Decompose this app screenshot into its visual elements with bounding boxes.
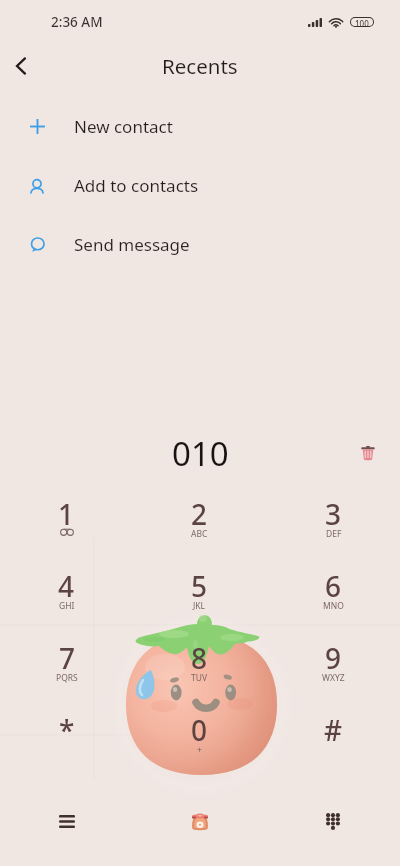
button[interactable]: Contacts (172, 793, 228, 849)
staticText: 6 (325, 567, 342, 605)
button[interactable]: 0 (133, 706, 266, 778)
staticText: 100 (355, 18, 369, 26)
staticText: Recents (162, 52, 238, 80)
button[interactable]: 8 (133, 634, 266, 706)
staticText: 8 (191, 639, 208, 677)
staticText: + (197, 744, 202, 756)
staticText: GHI (59, 600, 75, 612)
staticText: WXYZ (322, 672, 345, 684)
button[interactable]: Dialpad (305, 793, 361, 849)
staticText: New contact (74, 115, 173, 138)
staticText: Send message (74, 233, 190, 256)
button[interactable]: # (267, 706, 400, 778)
button[interactable]: Add to contacts (0, 156, 400, 215)
staticText: 3 (325, 495, 342, 533)
button[interactable]: Delete (350, 435, 386, 471)
staticText: TUV (191, 672, 208, 684)
button[interactable]: 9 (267, 634, 400, 706)
staticText: 4 (58, 567, 75, 605)
button[interactable]: 6 (267, 562, 400, 634)
staticText: JKL (193, 600, 206, 612)
staticText: 0 (191, 711, 208, 749)
staticText: # (324, 711, 343, 749)
button[interactable]: 1 (0, 490, 133, 562)
staticText: 0 (191, 711, 208, 749)
staticText: PQRS (56, 672, 78, 684)
button[interactable]: 2 (133, 490, 266, 562)
button[interactable]: 5 (133, 562, 266, 634)
staticText: 010 (172, 431, 229, 476)
button[interactable]: Call log (39, 793, 95, 849)
staticText: 9 (325, 639, 342, 677)
button[interactable]: Send message (0, 215, 400, 274)
staticText: ABC (191, 528, 208, 540)
staticText: * (59, 711, 75, 749)
staticText: 1 (58, 495, 75, 533)
staticText: Add to contacts (74, 174, 199, 197)
staticText: MNO (323, 600, 344, 612)
button[interactable]: Back (0, 45, 42, 87)
staticText: 5 (191, 567, 208, 605)
button[interactable]: 3 (267, 490, 400, 562)
button[interactable]: 4 (0, 562, 133, 634)
staticText: 2:36 AM (51, 13, 103, 31)
button[interactable]: 0 (133, 706, 266, 778)
button[interactable]: 8 (133, 634, 266, 706)
button[interactable]: New contact (0, 97, 400, 156)
button[interactable]: * (0, 706, 133, 778)
staticText: DEF (326, 528, 342, 540)
staticText: 2 (191, 495, 208, 533)
staticText: + (197, 744, 202, 756)
staticText: 8 (191, 639, 208, 677)
staticText: TUV (191, 672, 208, 684)
button[interactable]: 7 (0, 634, 133, 706)
staticText: 7 (59, 639, 76, 677)
